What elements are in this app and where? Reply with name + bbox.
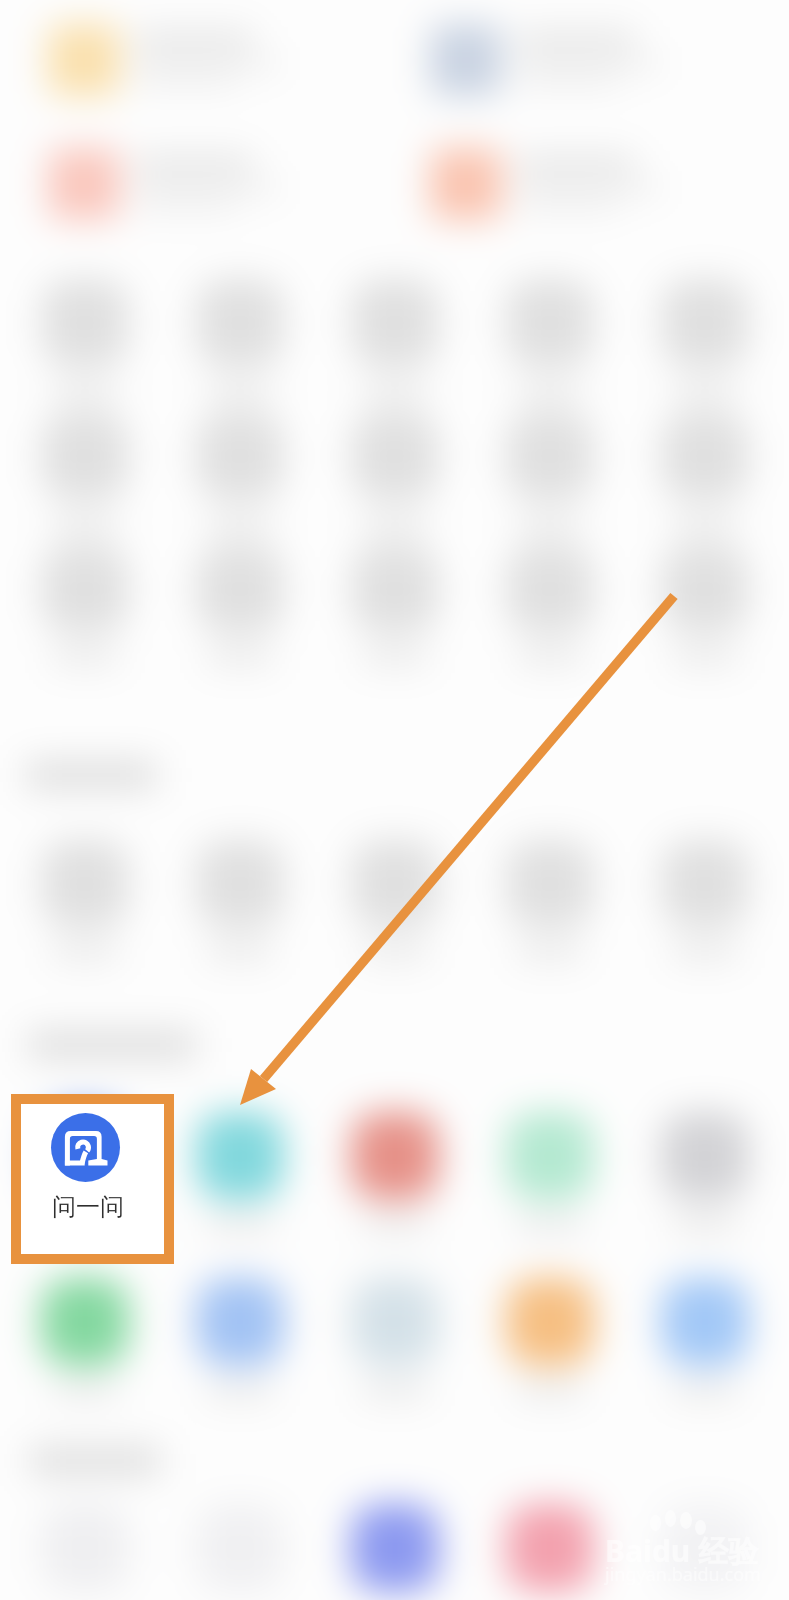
button[interactable]: 问一问 <box>21 1104 164 1254</box>
staticText: Baidu 经验 <box>605 1530 759 1571</box>
staticText: 问一问 <box>52 1192 124 1222</box>
staticText: jingyan.baidu.com <box>605 1562 761 1587</box>
